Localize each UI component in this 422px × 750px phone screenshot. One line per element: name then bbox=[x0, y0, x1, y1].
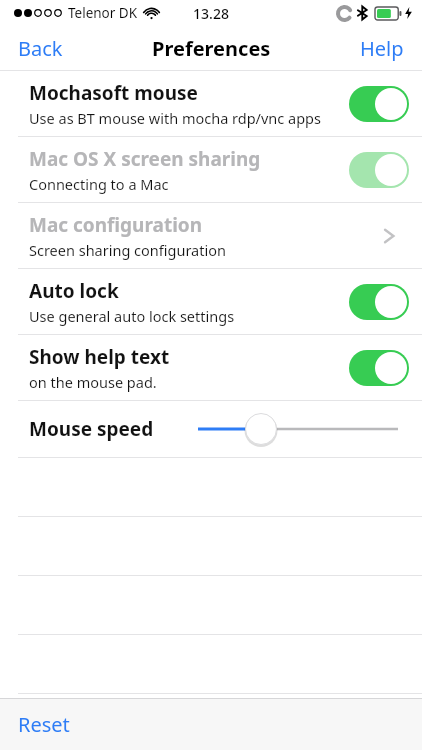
button[interactable]: Show help text bbox=[0, 335, 422, 400]
staticText: Use general auto lock settings bbox=[29, 306, 235, 326]
staticText: Help bbox=[360, 35, 404, 62]
staticText: Telenor DK bbox=[68, 4, 138, 22]
staticText: Preferences bbox=[152, 35, 271, 62]
staticText: Mouse speed bbox=[29, 416, 154, 442]
button[interactable]: Toggle bbox=[349, 152, 409, 188]
staticText: on the mouse pad. bbox=[29, 372, 157, 392]
button[interactable]: Back bbox=[0, 29, 81, 68]
staticText: Auto lock bbox=[29, 278, 119, 304]
button[interactable]: Mochasoft mouse bbox=[0, 71, 422, 136]
staticText: Reset bbox=[18, 711, 70, 738]
staticText: Back bbox=[18, 35, 63, 62]
staticText: Screen sharing configuration bbox=[29, 240, 226, 260]
button[interactable]: Reset bbox=[0, 703, 88, 746]
button[interactable]: Toggle bbox=[349, 284, 409, 320]
button[interactable]: Mac OS X screen sharing bbox=[0, 137, 422, 202]
staticText: Connecting to a Mac bbox=[29, 174, 169, 194]
staticText: Use as BT mouse with mocha rdp/vnc apps bbox=[29, 108, 321, 128]
staticText: Mac configuration bbox=[29, 212, 203, 238]
button[interactable]: Auto lock bbox=[0, 269, 422, 334]
staticText: 13.28 bbox=[193, 4, 229, 23]
staticText: Mac OS X screen sharing bbox=[29, 146, 261, 172]
button[interactable]: Mac configuration bbox=[0, 203, 422, 268]
staticText: Mochasoft mouse bbox=[29, 80, 198, 106]
button[interactable]: Help bbox=[342, 29, 422, 68]
button[interactable]: Mouse speed slider bbox=[190, 407, 404, 451]
other: Open Mac configuration bbox=[378, 225, 400, 247]
staticText: Show help text bbox=[29, 344, 170, 370]
button[interactable]: Toggle bbox=[349, 350, 409, 386]
button[interactable]: Toggle bbox=[349, 86, 409, 122]
